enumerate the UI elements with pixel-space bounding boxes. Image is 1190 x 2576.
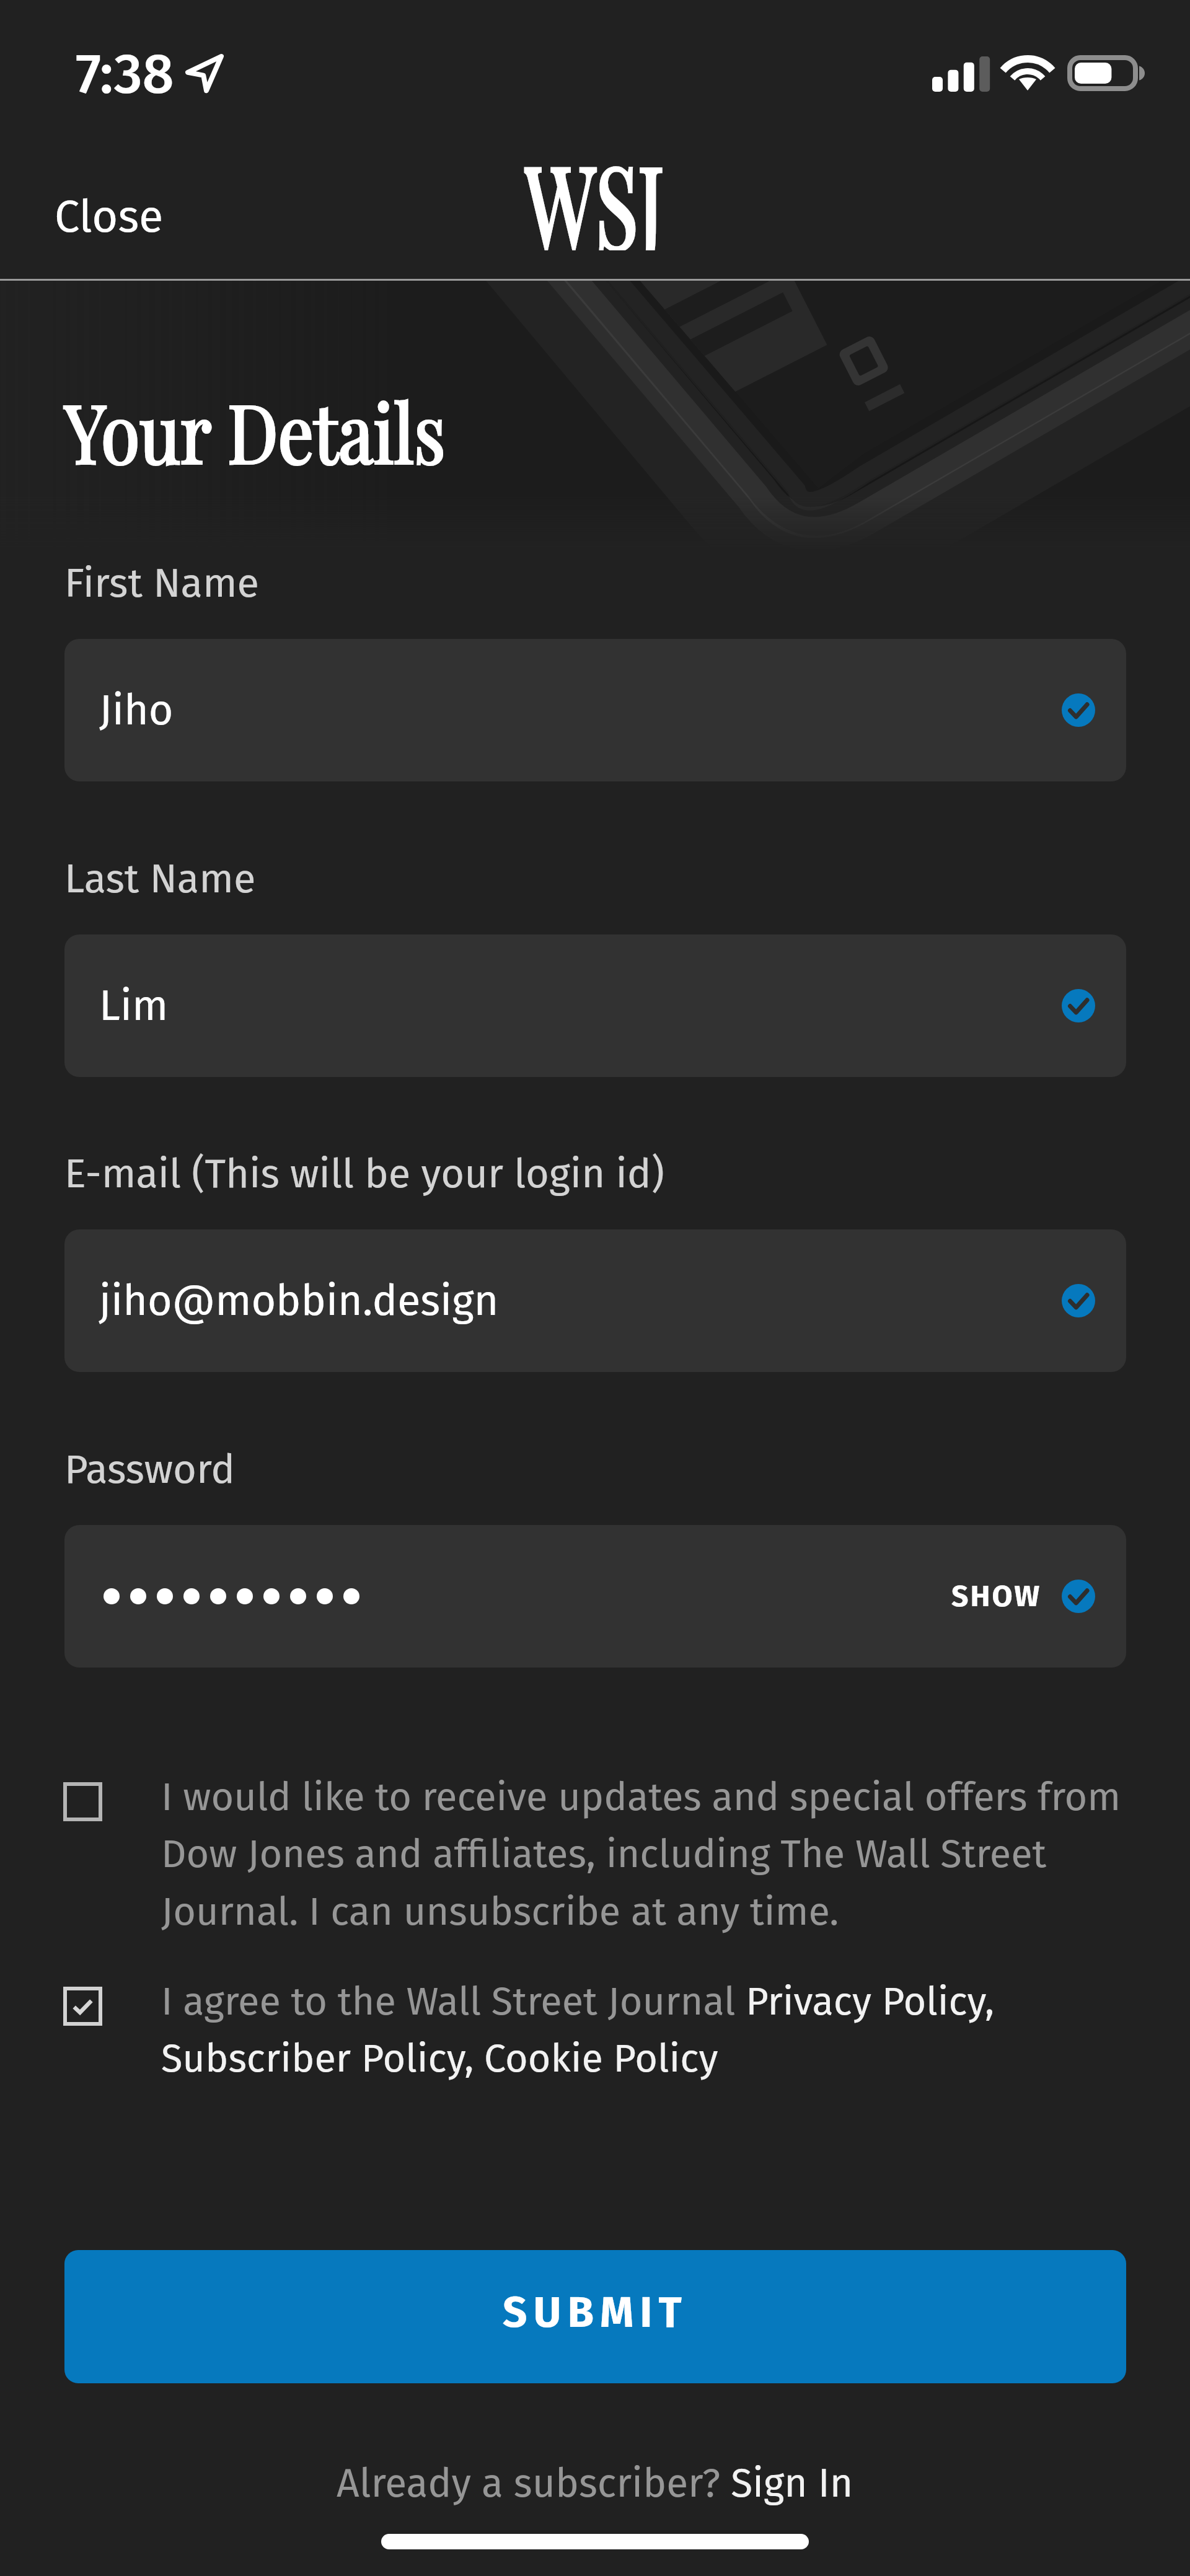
staticText: Your Details [64, 376, 446, 483]
other: Location active [186, 55, 223, 92]
staticText: jiho@mobbin.design [99, 1275, 499, 1326]
staticText: Already a subscriber? Sign In [337, 2460, 853, 2507]
button[interactable]: jiho@mobbin.design [64, 1229, 1126, 1372]
button[interactable]: SHOW [945, 1567, 1048, 1625]
button[interactable]: I agree to the Wall Street Journal Priva… [161, 1978, 1140, 2082]
staticText: I agree to the Wall Street Journal Priva… [161, 1978, 1140, 2082]
staticText: Close [55, 190, 164, 244]
other: Field valid [1062, 989, 1095, 1022]
button[interactable]: Close [25, 174, 193, 260]
button[interactable]: Lim [64, 934, 1126, 1077]
staticText: Lim [99, 980, 169, 1031]
staticText: E-mail (This will be your login id) [64, 1150, 664, 1198]
other: Field valid [1062, 1580, 1095, 1613]
staticText: 7:38 [76, 41, 174, 108]
other: Wi-Fi [1003, 55, 1053, 92]
button[interactable] [63, 1987, 102, 2026]
staticText: SHOW [951, 1578, 1042, 1614]
button[interactable]: I would like to receive updates and spec… [161, 1774, 1140, 1935]
staticText: I would like to receive updates and spec… [161, 1774, 1140, 1935]
staticText: First Name [64, 559, 260, 607]
button[interactable]: SUBMIT [64, 2250, 1126, 2383]
button[interactable] [63, 1782, 102, 1821]
staticText: WSJ [524, 126, 664, 250]
staticText: Password [64, 1445, 236, 1493]
other: Field valid [1062, 693, 1095, 727]
staticText: SUBMIT [503, 2287, 688, 2338]
button[interactable]: SHOW [64, 1525, 1126, 1668]
staticText: Last Name [64, 855, 256, 903]
button[interactable]: Jiho [64, 639, 1126, 781]
staticText: Jiho [99, 685, 174, 736]
other: Field valid [1062, 1284, 1095, 1317]
button[interactable]: Already a subscriber? Sign In [324, 2451, 866, 2516]
